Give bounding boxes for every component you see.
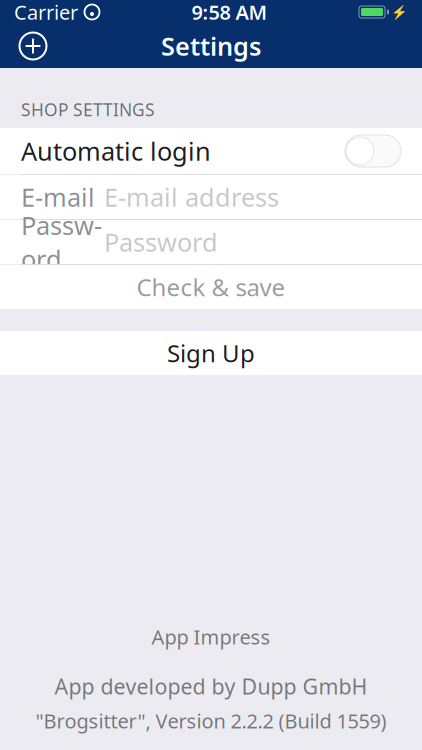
staticText: E-mail	[21, 180, 95, 214]
staticText: 9:58 AM	[191, 0, 267, 25]
staticText: Sign Up	[167, 337, 255, 369]
staticText: App developed by Dupp GmbH	[54, 672, 367, 700]
staticText: Password	[104, 225, 218, 259]
staticText: SHOP SETTINGS	[21, 98, 155, 121]
staticText: App Impress	[151, 624, 270, 650]
button[interactable]: Automatic login	[345, 135, 401, 167]
staticText: E-mail address	[104, 180, 279, 214]
staticText: Automatic login	[21, 134, 211, 168]
button[interactable]: Sign Up	[0, 331, 422, 375]
button[interactable]: E-mail	[0, 175, 422, 219]
button[interactable]: App Impress	[131, 618, 290, 656]
button[interactable]: Check & save	[0, 265, 422, 309]
staticText: "Brogsitter", Version 2.2.2 (Build 1559)	[35, 707, 386, 734]
button[interactable]: Add	[11, 24, 55, 68]
staticText: Password	[21, 208, 102, 276]
button[interactable]: Password	[0, 220, 422, 264]
staticText: Check & save	[136, 271, 285, 303]
staticText: ⚡	[391, 4, 408, 20]
staticText: Settings	[161, 29, 261, 63]
staticText: Carrier	[14, 0, 78, 25]
